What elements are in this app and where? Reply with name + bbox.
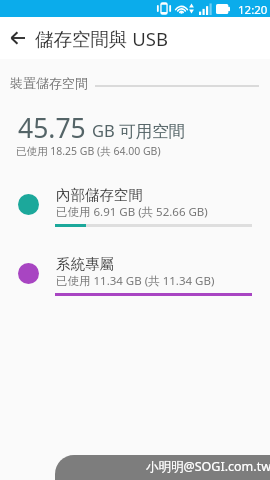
staticText: 已使用 18.25 GB (共 64.00 GB) [16, 144, 161, 158]
staticText: 裝置儲存空間 [10, 75, 88, 91]
staticText: 小明明@SOGI.com.tw [146, 458, 270, 475]
staticText: 系統專屬 [56, 255, 114, 273]
button[interactable]: Back [1, 21, 35, 55]
staticText: GB 可用空間 [92, 119, 186, 142]
staticText: 已使用 11.34 GB (共 11.34 GB) [56, 273, 215, 289]
staticText: 內部儲存空間 [56, 186, 143, 204]
button[interactable]: 系統專屬 [0, 251, 270, 315]
button[interactable]: 內部儲存空間 [0, 182, 270, 246]
staticText: 已使用 6.91 GB (共 52.66 GB) [56, 204, 208, 220]
staticText: 儲存空間與 USB [35, 26, 169, 51]
staticText: 45.75 [18, 110, 86, 146]
staticText: 12:20 [238, 2, 268, 18]
